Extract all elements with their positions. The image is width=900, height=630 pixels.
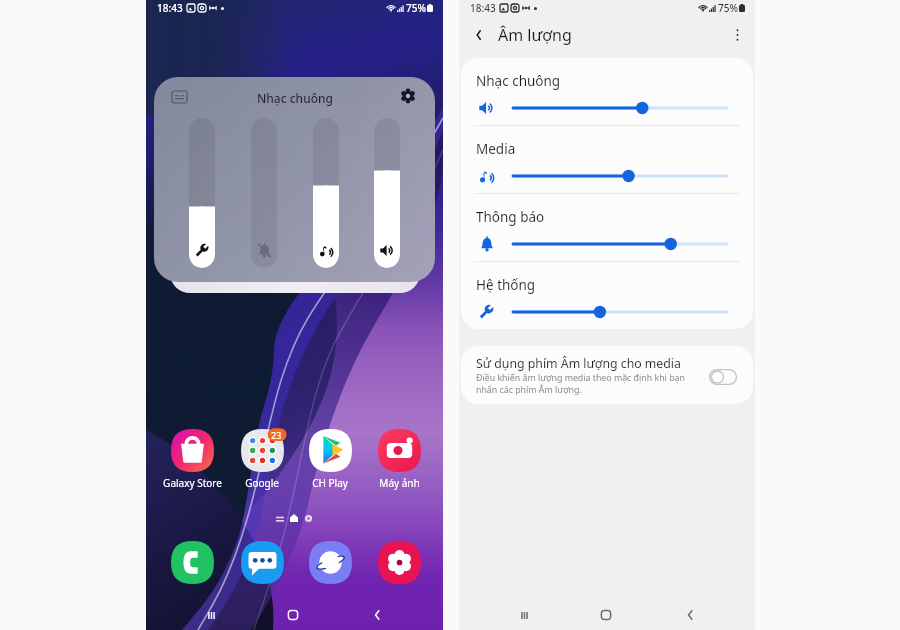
- button[interactable]: Thông báo: [461, 194, 753, 261]
- staticText: Galaxy Store: [163, 476, 222, 490]
- button[interactable]: Galaxy Store: [158, 429, 226, 490]
- staticText: Thông báo: [476, 208, 545, 226]
- staticText: Âm lượng: [498, 24, 572, 46]
- button[interactable]: Messages: [241, 541, 284, 584]
- button[interactable]: Back: [362, 598, 392, 630]
- button[interactable]: Keyboard: [172, 91, 187, 103]
- button[interactable]: Phone: [171, 541, 214, 584]
- staticText: 75%: [406, 1, 426, 15]
- staticText: 18:43: [157, 1, 183, 15]
- button[interactable]: [374, 118, 400, 268]
- staticText: CH Play: [312, 476, 348, 490]
- button[interactable]: [313, 118, 339, 268]
- button[interactable]: Hệ thống: [461, 262, 753, 329]
- button[interactable]: Back: [467, 23, 491, 47]
- staticText: Nhạc chuông: [257, 90, 333, 106]
- button[interactable]: Recents: [196, 598, 226, 630]
- other: Toggle: [709, 369, 737, 385]
- button[interactable]: Volume settings: [401, 89, 415, 103]
- button[interactable]: Recents: [509, 598, 539, 630]
- staticText: Sử dụng phím Âm lượng cho media: [476, 355, 681, 372]
- button[interactable]: Media: [461, 126, 753, 193]
- button[interactable]: Sử dụng phím Âm lượng cho media: [461, 346, 753, 404]
- button[interactable]: Back: [675, 598, 705, 630]
- staticText: Máy ảnh: [379, 476, 420, 490]
- button[interactable]: Gallery: [378, 541, 421, 584]
- staticText: Điều khiển âm lượng media theo mặc định …: [476, 372, 685, 395]
- staticText: 75%: [718, 1, 738, 15]
- staticText: 23: [271, 429, 282, 441]
- button[interactable]: Home: [591, 598, 621, 630]
- button[interactable]: [251, 118, 277, 268]
- button[interactable]: Home: [278, 598, 308, 630]
- staticText: 18:43: [470, 1, 496, 15]
- button[interactable]: Máy ảnh: [365, 429, 433, 490]
- button[interactable]: Nhạc chuông: [461, 58, 753, 125]
- button[interactable]: More options: [724, 22, 750, 48]
- button[interactable]: 23: [228, 429, 296, 490]
- staticText: Google: [245, 476, 279, 490]
- button[interactable]: CH Play: [296, 429, 364, 490]
- button[interactable]: [189, 118, 215, 268]
- staticText: Nhạc chuông: [476, 72, 561, 90]
- button[interactable]: Internet: [309, 541, 352, 584]
- staticText: Media: [476, 140, 516, 158]
- staticText: Hệ thống: [476, 276, 536, 294]
